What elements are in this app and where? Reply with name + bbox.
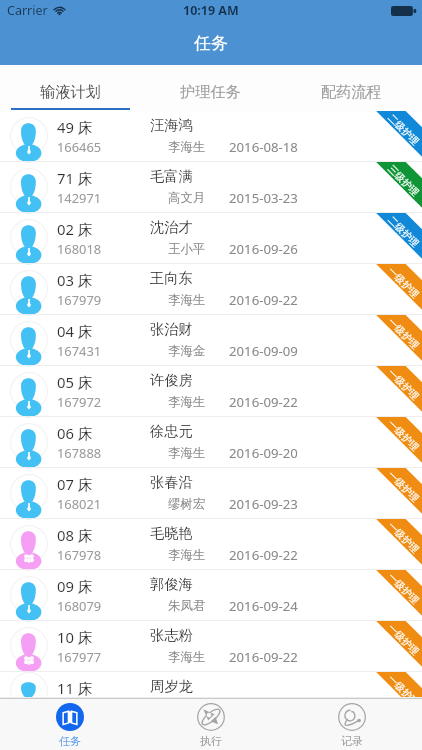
button[interactable]: 配药流程	[281, 65, 422, 111]
staticText: 2015-03-23	[229, 189, 298, 207]
button[interactable]: 任务	[0, 698, 140, 750]
staticText: 10:19 AM	[183, 2, 239, 19]
button[interactable]: 输液计划	[0, 65, 140, 111]
staticText: 07 床	[57, 474, 93, 494]
staticText: 167972	[57, 393, 102, 411]
staticText: 毛富满	[150, 167, 193, 185]
staticText: 168079	[57, 597, 102, 615]
staticText: 2016-09-20	[229, 444, 298, 462]
staticText: 2016-09-24	[229, 597, 298, 615]
staticText: 71 床	[57, 168, 93, 188]
staticText: 49 床	[57, 117, 93, 137]
button[interactable]: 记录	[281, 698, 422, 750]
button[interactable]: 03 床	[0, 264, 422, 315]
staticText: 2016-09-22	[229, 393, 298, 411]
staticText: 一级护理	[385, 571, 422, 607]
staticText: 04 床	[57, 321, 93, 341]
staticText: 朱凤君	[168, 598, 206, 614]
staticText: 缪树宏	[168, 496, 206, 512]
other: 记录	[338, 703, 366, 731]
button[interactable]: 06 床	[0, 417, 422, 468]
staticText: 李海生	[168, 394, 206, 410]
staticText: 王小平	[168, 241, 206, 257]
button[interactable]: 09 床	[0, 570, 422, 621]
staticText: 输液计划	[40, 82, 101, 101]
staticText: 徐忠元	[150, 422, 193, 440]
button[interactable]: 02 床	[0, 213, 422, 264]
staticText: 李海生	[168, 292, 206, 308]
staticText: 李海生	[168, 649, 206, 665]
staticText: 2016-09-22	[229, 648, 298, 666]
other: 任务	[56, 703, 84, 731]
staticText: 168021	[57, 495, 102, 513]
staticText: 三级护理	[385, 163, 422, 199]
button[interactable]: 护理任务	[140, 65, 281, 111]
button[interactable]: 49 床	[0, 111, 422, 162]
staticText: 一级护理	[385, 622, 422, 658]
button[interactable]: 执行	[140, 698, 281, 750]
staticText: 11 床	[57, 678, 93, 698]
staticText: 沈治才	[150, 218, 193, 236]
button[interactable]: 07 床	[0, 468, 422, 519]
staticText: 一级护理	[385, 520, 422, 556]
staticText: 10 床	[57, 627, 93, 647]
staticText: 168018	[57, 240, 102, 258]
staticText: 03 床	[57, 270, 93, 290]
staticText: 汪海鸿	[150, 116, 193, 134]
staticText: 周岁龙	[150, 677, 193, 695]
staticText: 执行	[200, 734, 222, 748]
staticText: 任务	[59, 734, 81, 748]
staticText: 许俊房	[150, 371, 193, 389]
staticText: 配药流程	[321, 82, 382, 101]
staticText: 王向东	[150, 269, 193, 287]
staticText: 2016-08-18	[229, 138, 298, 156]
staticText: 张治财	[150, 320, 193, 338]
button[interactable]: 71 床	[0, 162, 422, 213]
staticText: 郭俊海	[150, 575, 193, 593]
staticText: 2016-09-22	[229, 546, 298, 564]
staticText: 06 床	[57, 423, 93, 443]
button[interactable]: 04 床	[0, 315, 422, 366]
staticText: 一级护理	[385, 418, 422, 454]
staticText: Carrier	[7, 2, 48, 19]
staticText: 167888	[57, 444, 102, 462]
staticText: 一级护理	[385, 673, 422, 698]
staticText: 167977	[57, 648, 102, 666]
staticText: 一级护理	[385, 265, 422, 301]
staticText: 02 床	[57, 219, 93, 239]
staticText: 08 床	[57, 525, 93, 545]
staticText: 2016-09-26	[229, 240, 298, 258]
button[interactable]: 11 床	[0, 672, 422, 698]
other: 执行	[197, 703, 225, 731]
staticText: 毛晓艳	[150, 524, 193, 542]
staticText: 李海生	[168, 139, 206, 155]
staticText: 167979	[57, 291, 102, 309]
button[interactable]: 08 床	[0, 519, 422, 570]
staticText: 09 床	[57, 576, 93, 596]
staticText: 2016-09-22	[229, 291, 298, 309]
button[interactable]: 05 床	[0, 366, 422, 417]
staticText: 一级护理	[385, 316, 422, 352]
staticText: 二级护理	[385, 214, 422, 250]
staticText: 张春沿	[150, 473, 193, 491]
staticText: 166465	[57, 138, 102, 156]
staticText: 高文月	[168, 190, 206, 206]
staticText: 一级护理	[385, 469, 422, 505]
staticText: 二级护理	[385, 112, 422, 148]
staticText: 05 床	[57, 372, 93, 392]
staticText: 任务	[194, 33, 228, 54]
staticText: 张志粉	[150, 626, 193, 644]
staticText: 一级护理	[385, 367, 422, 403]
staticText: 李海生	[168, 445, 206, 461]
staticText: 2016-09-09	[229, 342, 298, 360]
staticText: 护理任务	[180, 82, 241, 101]
staticText: 2016-09-23	[229, 495, 298, 513]
staticText: 167978	[57, 546, 102, 564]
staticText: 167431	[57, 342, 102, 360]
staticText: 142971	[57, 189, 102, 207]
staticText: 记录	[341, 734, 363, 748]
button[interactable]: 10 床	[0, 621, 422, 672]
staticText: 李海金	[168, 343, 206, 359]
staticText: 李海生	[168, 547, 206, 563]
